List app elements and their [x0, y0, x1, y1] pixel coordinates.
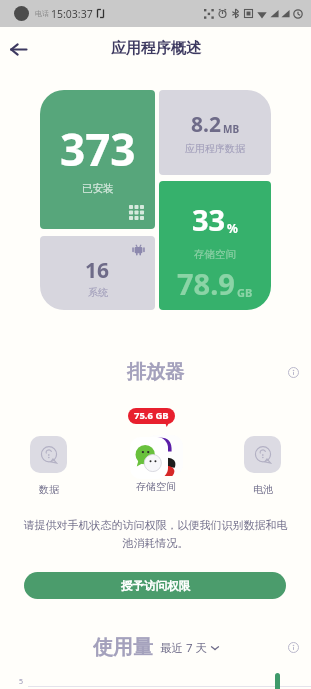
- button[interactable]: Back: [4, 35, 32, 63]
- staticText: 75.6 GB: [134, 409, 169, 422]
- staticText: 请提供对手机状态的访问权限，以便我们识别数据和电池消耗情况。: [19, 518, 292, 550]
- button[interactable]: 33: [159, 181, 271, 310]
- staticText: 373: [60, 119, 136, 179]
- staticText: 存储空间: [194, 248, 236, 261]
- button[interactable]: 授予访问权限: [24, 572, 286, 599]
- staticText: 授予访问权限: [121, 579, 190, 593]
- staticText: 系统: [88, 286, 108, 299]
- staticText: 使用量: [93, 635, 153, 659]
- staticText: 已安装: [82, 182, 114, 195]
- button[interactable]: Info: [283, 362, 303, 382]
- staticText: 应用程序数据: [185, 142, 245, 155]
- staticText: 33: [192, 200, 226, 239]
- staticText: 排放器: [127, 360, 184, 384]
- staticText: 最近 7 天: [160, 640, 208, 656]
- staticText: MB: [223, 122, 240, 136]
- staticText: 15:03:37: [51, 7, 93, 21]
- button[interactable]: Info: [283, 637, 303, 657]
- staticText: 存储空间: [136, 480, 176, 493]
- button[interactable]: 373: [40, 90, 155, 229]
- staticText: 电话: [35, 9, 49, 18]
- staticText: 5: [19, 677, 24, 687]
- staticText: 16: [85, 256, 110, 285]
- button[interactable]: 电池: [224, 404, 301, 496]
- button[interactable]: 8.2: [159, 90, 271, 175]
- staticText: GB: [237, 285, 253, 300]
- button[interactable]: 最近 7 天: [160, 640, 219, 656]
- button[interactable]: 数据: [10, 404, 87, 496]
- button[interactable]: 75.6 GB: [117, 404, 194, 493]
- staticText: 8.2: [191, 110, 221, 139]
- staticText: 应用程序概述: [111, 39, 201, 58]
- staticText: 78.9: [177, 264, 235, 303]
- button[interactable]: 16: [40, 236, 155, 310]
- staticText: %: [227, 220, 238, 236]
- staticText: 电池: [253, 483, 273, 496]
- staticText: 数据: [39, 483, 59, 496]
